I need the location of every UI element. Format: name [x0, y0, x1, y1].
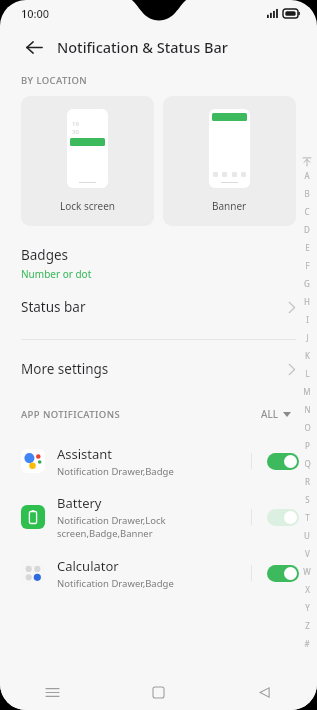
staticText: A	[304, 170, 310, 181]
button[interactable]: More settings	[0, 352, 317, 386]
button[interactable]: Status bar	[0, 285, 317, 329]
staticText: Number or dot	[21, 267, 92, 281]
staticText: W	[303, 566, 311, 577]
staticText: B	[304, 188, 310, 199]
staticText: X	[305, 584, 310, 595]
staticText: D	[304, 224, 310, 235]
button[interactable]: Banner	[163, 96, 296, 226]
button[interactable]: Home	[105, 674, 211, 710]
button[interactable]: Toggle notifications	[267, 565, 299, 582]
button[interactable]: Assistant	[0, 433, 317, 489]
button[interactable]: Calculator	[0, 545, 317, 601]
staticText: Calculator	[57, 557, 119, 575]
staticText: T	[305, 512, 310, 523]
button[interactable]: Recents	[0, 674, 105, 710]
staticText: H	[304, 296, 310, 307]
staticText: BY LOCATION	[21, 74, 88, 87]
staticText: L	[305, 368, 310, 379]
staticText: More settings	[21, 360, 109, 378]
staticText: Notification & Status Bar	[57, 37, 228, 57]
staticText: S	[305, 494, 310, 505]
staticText: I	[306, 314, 309, 325]
button[interactable]: Toggle notifications	[267, 453, 299, 470]
staticText: Notification Drawer,Badge	[57, 465, 174, 478]
staticText: 30	[72, 128, 79, 136]
staticText: #	[304, 638, 310, 649]
button[interactable]: Badges	[0, 244, 317, 285]
button[interactable]: ALL	[259, 404, 293, 424]
staticText: P	[305, 440, 310, 451]
staticText: F	[305, 260, 310, 271]
staticText: Notification Drawer,Lock screen,Badge,Ba…	[57, 514, 166, 540]
staticText: O	[304, 422, 311, 433]
button[interactable]: Toggle notifications	[267, 509, 299, 526]
button[interactable]: Alphabet index	[299, 157, 315, 652]
staticText: Banner	[212, 199, 247, 213]
staticText: Assistant	[57, 445, 113, 463]
staticText: V	[305, 548, 310, 559]
button[interactable]: Back	[211, 674, 317, 710]
staticText: J	[306, 332, 309, 343]
staticText: Battery	[57, 494, 102, 512]
staticText: M	[303, 386, 311, 397]
staticText: K	[305, 350, 310, 361]
staticText: Y	[305, 602, 310, 613]
staticText: Status bar	[21, 298, 86, 316]
staticText: C	[304, 206, 310, 217]
button[interactable]: Battery	[0, 489, 317, 545]
staticText: 19	[72, 120, 79, 128]
button[interactable]: Back	[19, 32, 49, 62]
staticText: Q	[304, 458, 311, 469]
staticText: E	[305, 242, 310, 253]
staticText: G	[304, 278, 310, 289]
staticText: N	[304, 404, 311, 415]
staticText: R	[305, 476, 310, 487]
button[interactable]: 19	[21, 96, 154, 226]
staticText: Lock screen	[60, 199, 116, 213]
staticText: ALL	[261, 407, 278, 421]
staticText: 10:00	[21, 6, 50, 21]
staticText: Badges	[21, 246, 69, 264]
staticText: Notification Drawer,Badge	[57, 577, 174, 590]
staticText: Z	[305, 620, 310, 631]
staticText: APP NOTIFICATIONS	[21, 408, 121, 421]
staticText: U	[304, 530, 310, 541]
